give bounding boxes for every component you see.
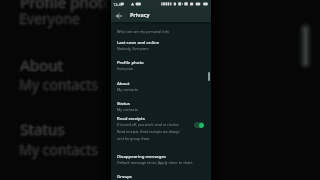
staticText: My contacts xyxy=(19,140,98,159)
staticText: My contacts xyxy=(20,75,99,94)
staticText: About xyxy=(21,54,65,75)
staticText: Everyone xyxy=(20,8,81,27)
staticText: Profile photo xyxy=(18,0,111,13)
staticText: Everyone xyxy=(19,9,80,28)
staticText: My contacts xyxy=(19,138,98,157)
staticText: Profile photo xyxy=(22,0,115,13)
staticText: Disappearing messages xyxy=(117,153,166,159)
staticText: Status xyxy=(20,119,65,140)
button[interactable]: Groups xyxy=(111,172,211,180)
staticText: Status xyxy=(22,119,67,140)
staticText: My contacts xyxy=(18,74,97,93)
staticText: Read receipts. Read receipts are always xyxy=(117,129,180,134)
staticText: My contacts xyxy=(19,73,98,92)
staticText: My contacts xyxy=(19,75,98,94)
staticText: Profile photo xyxy=(19,0,112,12)
staticText: My contacts xyxy=(117,87,138,92)
staticText: About xyxy=(20,55,64,76)
staticText: Profile photo xyxy=(117,59,144,65)
staticText: My contacts xyxy=(20,76,99,95)
staticText: About xyxy=(117,80,130,86)
staticText: About xyxy=(20,55,64,76)
staticText: About xyxy=(22,55,66,76)
staticText: My contacts xyxy=(20,141,99,160)
staticText: About xyxy=(18,55,62,76)
button[interactable]: Profile photo xyxy=(111,58,211,76)
staticText: Profile photo xyxy=(21,0,114,14)
staticText: About xyxy=(19,56,63,77)
staticText: Profile photo xyxy=(21,0,114,12)
staticText: 12:41 xyxy=(113,2,123,7)
button[interactable]: Disappearing messages xyxy=(111,152,211,170)
button[interactable]: Last seen and online xyxy=(111,38,211,56)
staticText: Groups xyxy=(117,173,132,179)
staticText: My contacts xyxy=(117,107,138,112)
staticText: About xyxy=(21,55,65,76)
staticText: Everyone xyxy=(21,9,82,28)
staticText: About xyxy=(20,56,64,77)
staticText: Nobody, Everyone xyxy=(117,46,149,51)
staticText: Everyone xyxy=(19,9,80,28)
staticText: Privacy xyxy=(130,11,150,18)
staticText: Status xyxy=(20,121,65,142)
staticText: My contacts xyxy=(17,75,96,94)
staticText: Read receipts xyxy=(117,115,145,121)
staticText: Status xyxy=(117,100,130,106)
staticText: Everyone xyxy=(18,8,79,27)
staticText: My contacts xyxy=(19,75,98,94)
button[interactable]: Read receipts xyxy=(111,114,211,146)
staticText: My contacts xyxy=(19,140,98,159)
staticText: Everyone xyxy=(20,10,81,29)
staticText: About xyxy=(20,53,64,74)
staticText: My contacts xyxy=(19,140,98,159)
staticText: Who can see my personal info xyxy=(117,29,169,34)
staticText: Default message timer, Apply timer to ch… xyxy=(117,160,193,165)
staticText: About xyxy=(20,55,64,76)
staticText: My contacts xyxy=(17,140,96,159)
button[interactable]: Back xyxy=(114,11,123,20)
staticText: Everyone xyxy=(18,10,79,29)
staticText: Everyone xyxy=(20,9,81,28)
staticText: Everyone xyxy=(19,11,80,30)
staticText: My contacts xyxy=(20,74,99,93)
staticText: Profile photo xyxy=(19,0,112,14)
button[interactable]: Status xyxy=(111,99,211,117)
staticText: My contacts xyxy=(18,141,97,160)
staticText: Everyone xyxy=(117,66,133,71)
staticText: My contacts xyxy=(19,77,98,96)
staticText: Status xyxy=(20,119,65,140)
staticText: Profile photo xyxy=(20,0,113,13)
staticText: Profile photo xyxy=(20,0,113,15)
staticText: Profile photo xyxy=(20,0,113,11)
staticText: Profile photo xyxy=(20,0,113,13)
staticText: Last seen and online xyxy=(117,39,160,45)
staticText: Status xyxy=(18,119,63,140)
staticText: sent for group chats. xyxy=(117,136,151,141)
staticText: My contacts xyxy=(20,139,99,158)
staticText: My contacts xyxy=(19,142,98,161)
staticText: My contacts xyxy=(20,140,99,159)
staticText: Status xyxy=(21,120,66,141)
staticText: If turned off, you won't send or receive xyxy=(117,122,179,127)
staticText: Status xyxy=(19,120,64,141)
staticText: Status xyxy=(20,119,65,140)
staticText: My contacts xyxy=(21,140,100,159)
staticText: Everyone xyxy=(17,9,78,28)
staticText: My contacts xyxy=(18,76,97,95)
staticText: About xyxy=(21,56,65,77)
staticText: My contacts xyxy=(21,75,100,94)
staticText: My contacts xyxy=(18,139,97,158)
staticText: Profile photo xyxy=(20,0,113,13)
staticText: My contacts xyxy=(19,75,98,94)
staticText: Everyone xyxy=(19,7,80,26)
staticText: Status xyxy=(21,118,66,139)
staticText: Status xyxy=(19,118,64,139)
staticText: Everyone xyxy=(19,9,80,28)
staticText: Status xyxy=(21,119,66,140)
button[interactable]: About xyxy=(111,79,211,97)
staticText: Profile photo xyxy=(21,0,114,13)
staticText: Status xyxy=(20,117,65,138)
staticText: About xyxy=(19,54,63,75)
